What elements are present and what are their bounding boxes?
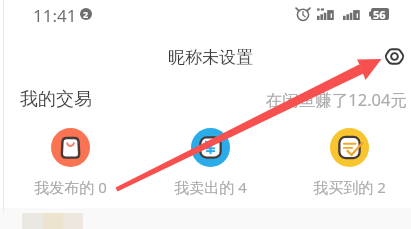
button[interactable]: 昵称未设置 (160, 45, 260, 69)
button[interactable]: 我发布的 0 (21, 124, 120, 196)
staticText: 11:41 (33, 4, 77, 27)
staticText: 56 (373, 7, 386, 22)
button[interactable]: 我的交易 (20, 88, 92, 111)
button[interactable]: 我卖出的 4 (161, 124, 260, 196)
button[interactable]: Settings (380, 42, 408, 70)
button[interactable]: 在闲鱼赚了12.04元 (255, 88, 407, 111)
staticText: 我发布的 0 (34, 177, 107, 196)
staticText: 我卖出的 4 (174, 177, 247, 196)
staticText: 昵称未设置 (168, 47, 253, 68)
staticText: 2 (83, 8, 89, 20)
staticText: 在闲鱼赚了12.04元 (255, 88, 407, 111)
staticText: 我买到的 2 (313, 177, 386, 196)
button[interactable]: 我买到的 2 (300, 124, 399, 196)
